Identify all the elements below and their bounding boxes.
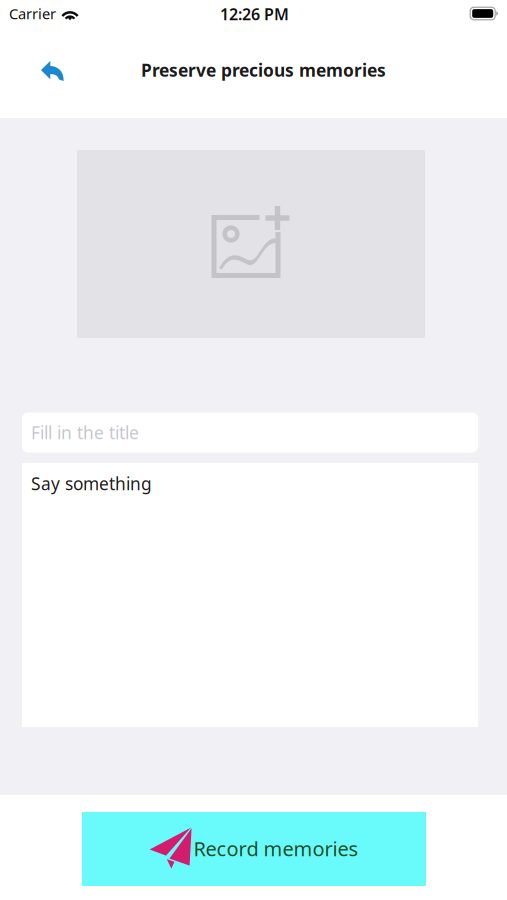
staticText: Fill in the title xyxy=(31,421,139,444)
staticText: Carrier xyxy=(9,4,56,23)
staticText: Say something xyxy=(31,472,152,495)
button[interactable]: Record memories xyxy=(82,812,426,886)
button[interactable]: Fill in the title xyxy=(22,412,478,452)
button[interactable]: Back xyxy=(25,48,79,94)
button[interactable]: Say something xyxy=(22,463,478,727)
staticText: Record memories xyxy=(193,835,358,862)
staticText: Preserve precious memories xyxy=(141,58,386,81)
button[interactable]: Add photo xyxy=(77,150,425,338)
staticText: 12:26 PM xyxy=(220,3,289,25)
